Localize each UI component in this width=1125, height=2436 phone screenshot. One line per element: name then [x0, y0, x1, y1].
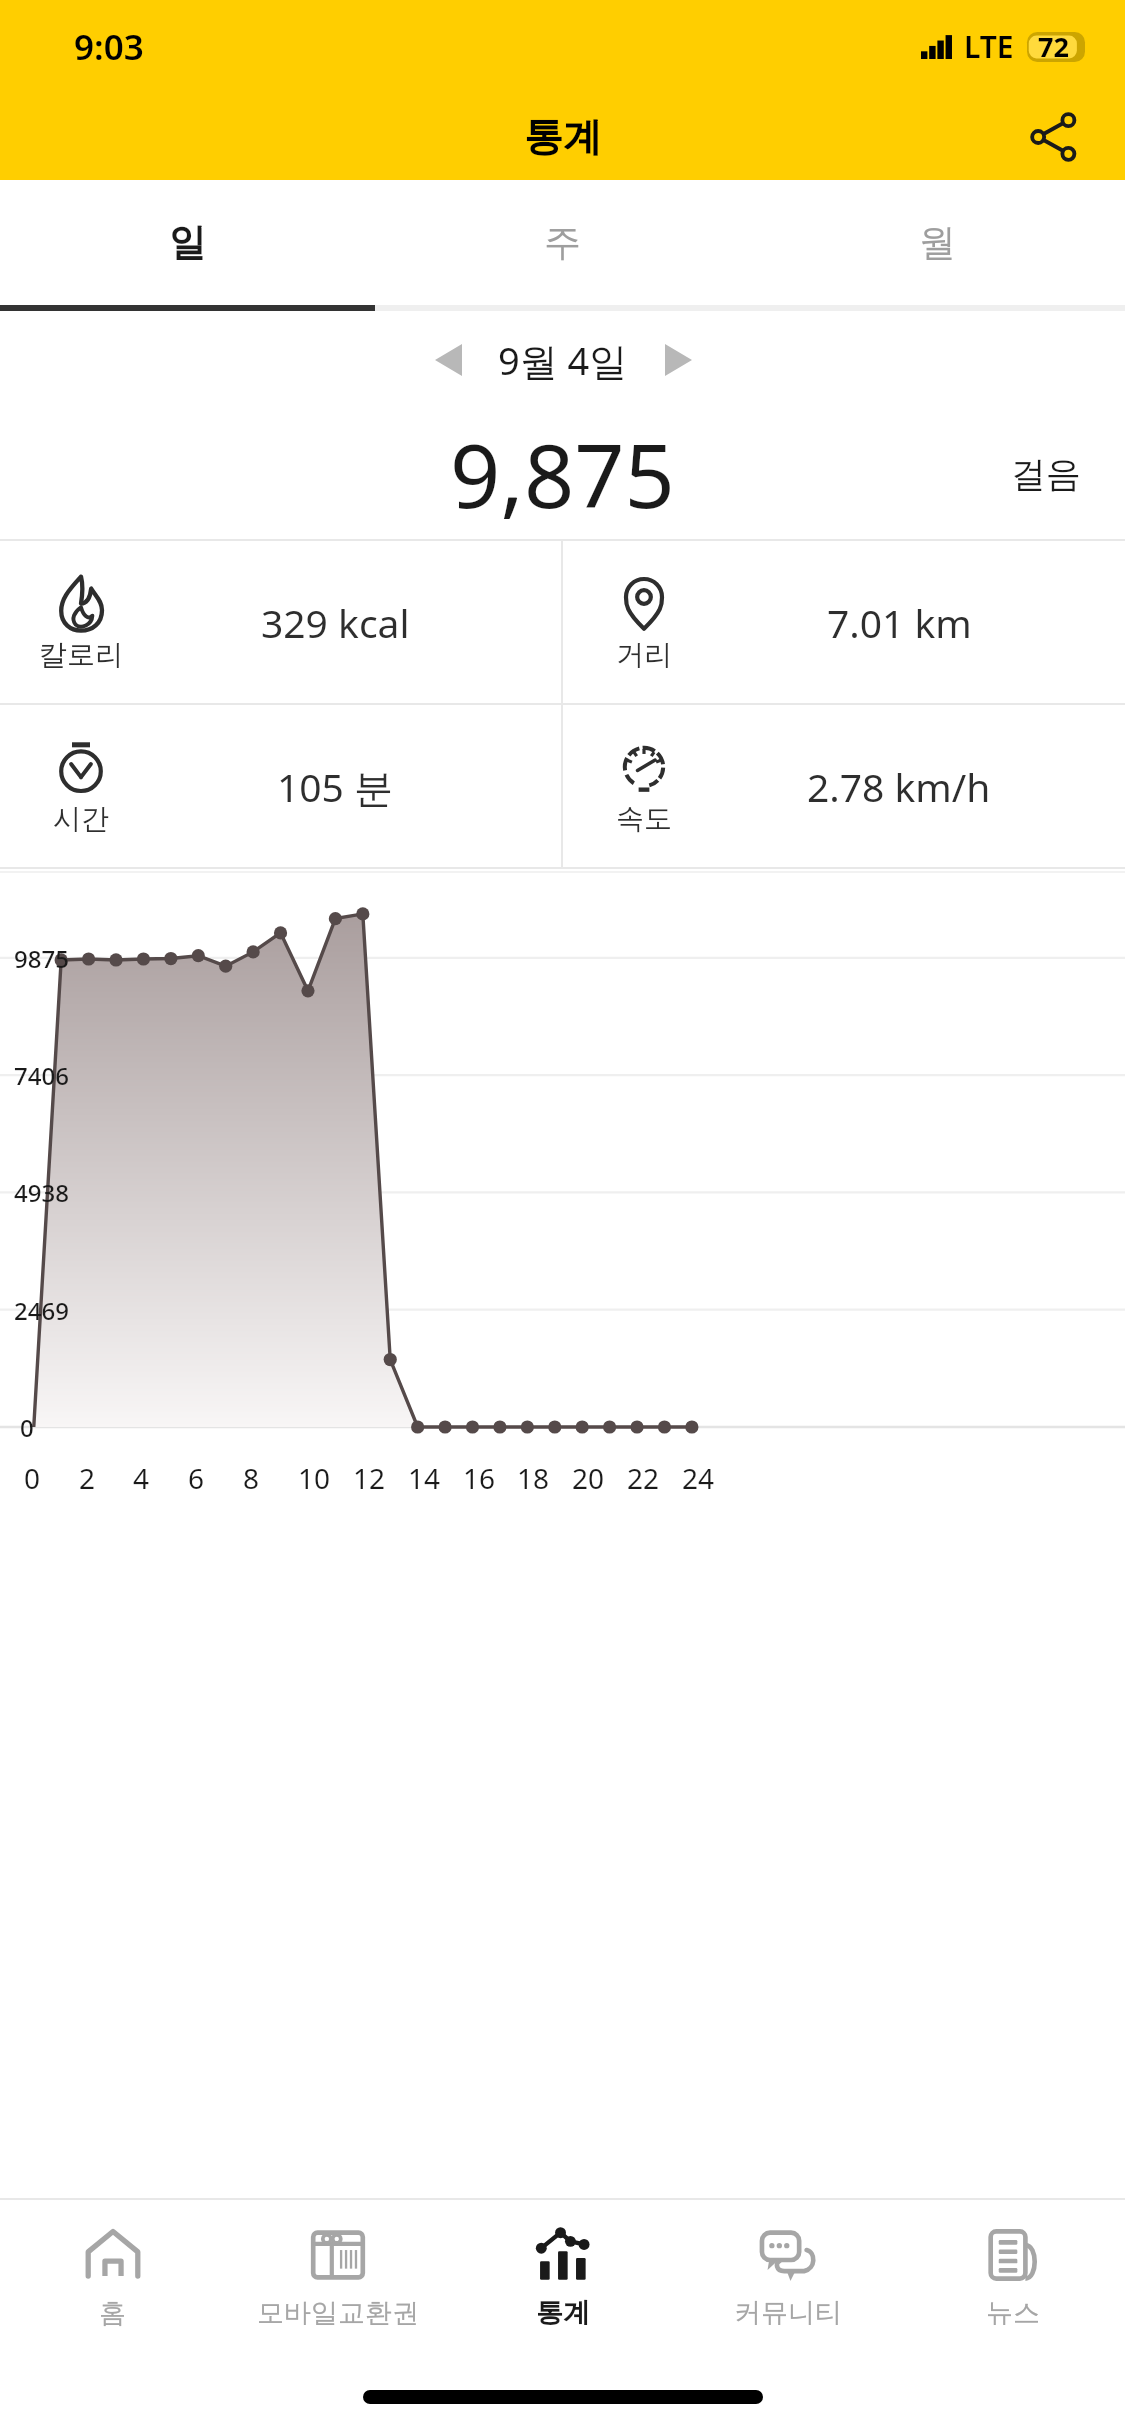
staticText: 0 — [20, 1411, 34, 1444]
staticText: 12 — [353, 1459, 386, 1497]
staticText: 속도 — [616, 801, 672, 836]
staticText: 14 — [408, 1459, 441, 1497]
staticText: 7406 — [14, 1059, 69, 1092]
staticText: 16 — [463, 1459, 496, 1497]
button[interactable]: Share — [1019, 102, 1089, 172]
button[interactable]: 커뮤니티 — [675, 2200, 900, 2370]
button[interactable]: 모바일교환권 — [225, 2200, 450, 2370]
staticText: 일 — [169, 219, 206, 266]
button[interactable]: Previous day — [412, 324, 484, 396]
button[interactable]: 일 — [0, 180, 375, 305]
staticText: 통계 — [536, 2296, 590, 2330]
staticText: 4 — [133, 1459, 150, 1497]
staticText: 2.78 km/h — [807, 760, 991, 813]
staticText: 9,875 — [450, 414, 675, 534]
staticText: 커뮤니티 — [734, 2296, 842, 2330]
staticText: 72 — [1038, 28, 1069, 65]
staticText: 통계 — [524, 112, 602, 161]
staticText: 7.01 km — [827, 596, 972, 649]
staticText: 24 — [682, 1459, 715, 1497]
staticText: 월 — [919, 219, 956, 266]
staticText: 9:03 — [74, 23, 144, 71]
staticText: 20 — [572, 1459, 605, 1497]
staticText: 6 — [188, 1459, 205, 1497]
staticText: 2 — [79, 1459, 96, 1497]
button[interactable]: 칼로리 — [0, 541, 561, 703]
button[interactable]: 시간 — [0, 705, 561, 867]
button[interactable]: 홈 — [0, 2200, 225, 2370]
staticText: 0 — [24, 1459, 41, 1497]
staticText: 22 — [627, 1459, 660, 1497]
staticText: LTE — [964, 26, 1014, 67]
staticText: 걸음 — [1011, 452, 1081, 496]
staticText: 홈 — [99, 2296, 126, 2330]
staticText: 뉴스 — [986, 2296, 1040, 2330]
staticText: 10 — [298, 1459, 331, 1497]
staticText: 모바일교환권 — [257, 2296, 419, 2330]
button[interactable]: 월 — [750, 180, 1125, 305]
staticText: 2469 — [14, 1294, 69, 1327]
staticText: 주 — [544, 219, 581, 266]
button[interactable]: 뉴스 — [900, 2200, 1125, 2370]
button[interactable]: 속도 — [563, 705, 1125, 867]
staticText: 4938 — [14, 1176, 69, 1209]
staticText: 8 — [243, 1459, 260, 1497]
button[interactable]: 거리 — [563, 541, 1125, 703]
button[interactable]: Next day — [642, 324, 714, 396]
button[interactable]: 주 — [375, 180, 750, 305]
staticText: 시간 — [53, 801, 109, 836]
staticText: 329 kcal — [261, 596, 410, 649]
staticText: 18 — [517, 1459, 550, 1497]
staticText: 칼로리 — [39, 637, 123, 672]
staticText: 9월 4일 — [498, 334, 628, 386]
staticText: 105 분 — [277, 760, 394, 813]
button[interactable]: 통계 — [450, 2200, 675, 2370]
staticText: 거리 — [616, 637, 672, 672]
staticText: 9875 — [14, 942, 69, 975]
